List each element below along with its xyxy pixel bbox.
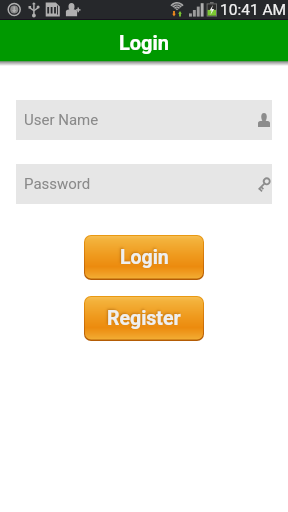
staticText: Login xyxy=(120,246,169,269)
button[interactable]: User Name xyxy=(16,100,272,140)
button[interactable]: Password xyxy=(16,164,272,204)
staticText: Register xyxy=(107,307,181,330)
button[interactable]: Login xyxy=(84,235,204,280)
button[interactable]: Register xyxy=(84,296,204,341)
staticText: User Name xyxy=(24,111,99,129)
staticText: Password xyxy=(24,175,91,193)
staticText: 10:41 AM xyxy=(220,1,287,19)
staticText: Login xyxy=(119,31,170,54)
